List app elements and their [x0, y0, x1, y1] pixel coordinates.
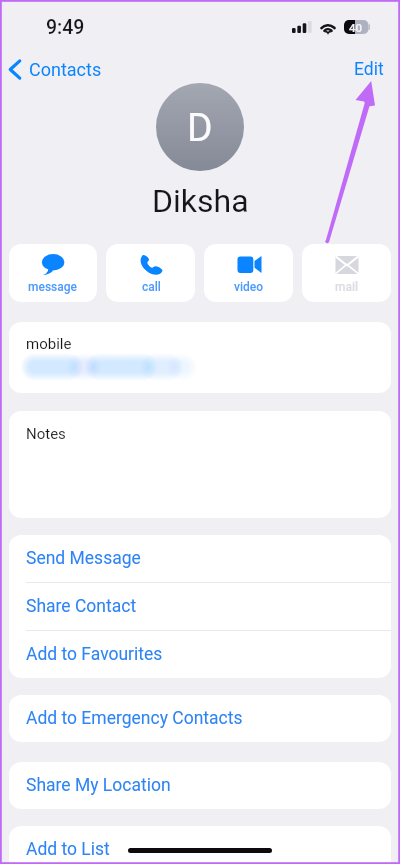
staticText: Diksha: [152, 182, 249, 220]
staticText: video: [234, 280, 264, 294]
staticText: Edit: [354, 59, 384, 80]
staticText: message: [28, 280, 78, 294]
button[interactable]: call: [106, 244, 195, 302]
button[interactable]: video: [204, 244, 293, 302]
staticText: Notes: [26, 425, 66, 443]
staticText: Share Contact: [26, 596, 137, 617]
button[interactable]: Send Message: [9, 535, 391, 582]
button[interactable]: Contacts: [8, 59, 102, 80]
staticText: Send Message: [26, 548, 141, 569]
button[interactable]: Add to List: [9, 826, 391, 864]
staticText: Share My Location: [26, 775, 171, 796]
staticText: 9:49: [46, 16, 85, 39]
staticText: call: [142, 280, 161, 294]
button[interactable]: Add to Favourites: [9, 631, 391, 678]
staticText: Add to Emergency Contacts: [26, 708, 243, 729]
button[interactable]: Share Contact: [9, 583, 391, 630]
staticText: Add to List: [26, 839, 110, 860]
staticText: Contacts: [29, 59, 102, 80]
staticText: 40: [349, 21, 363, 34]
button[interactable]: Notes: [9, 411, 391, 518]
button[interactable]: mail: [302, 244, 391, 302]
button[interactable]: message: [9, 244, 97, 302]
button[interactable]: Add to Emergency Contacts: [9, 695, 391, 742]
staticText: mail: [335, 280, 359, 294]
staticText: Add to Favourites: [26, 644, 163, 665]
button[interactable]: mobile: [9, 322, 391, 393]
staticText: mobile: [26, 335, 72, 353]
button[interactable]: Share My Location: [9, 762, 391, 809]
staticText: D: [187, 105, 213, 151]
button[interactable]: Edit: [354, 59, 384, 80]
